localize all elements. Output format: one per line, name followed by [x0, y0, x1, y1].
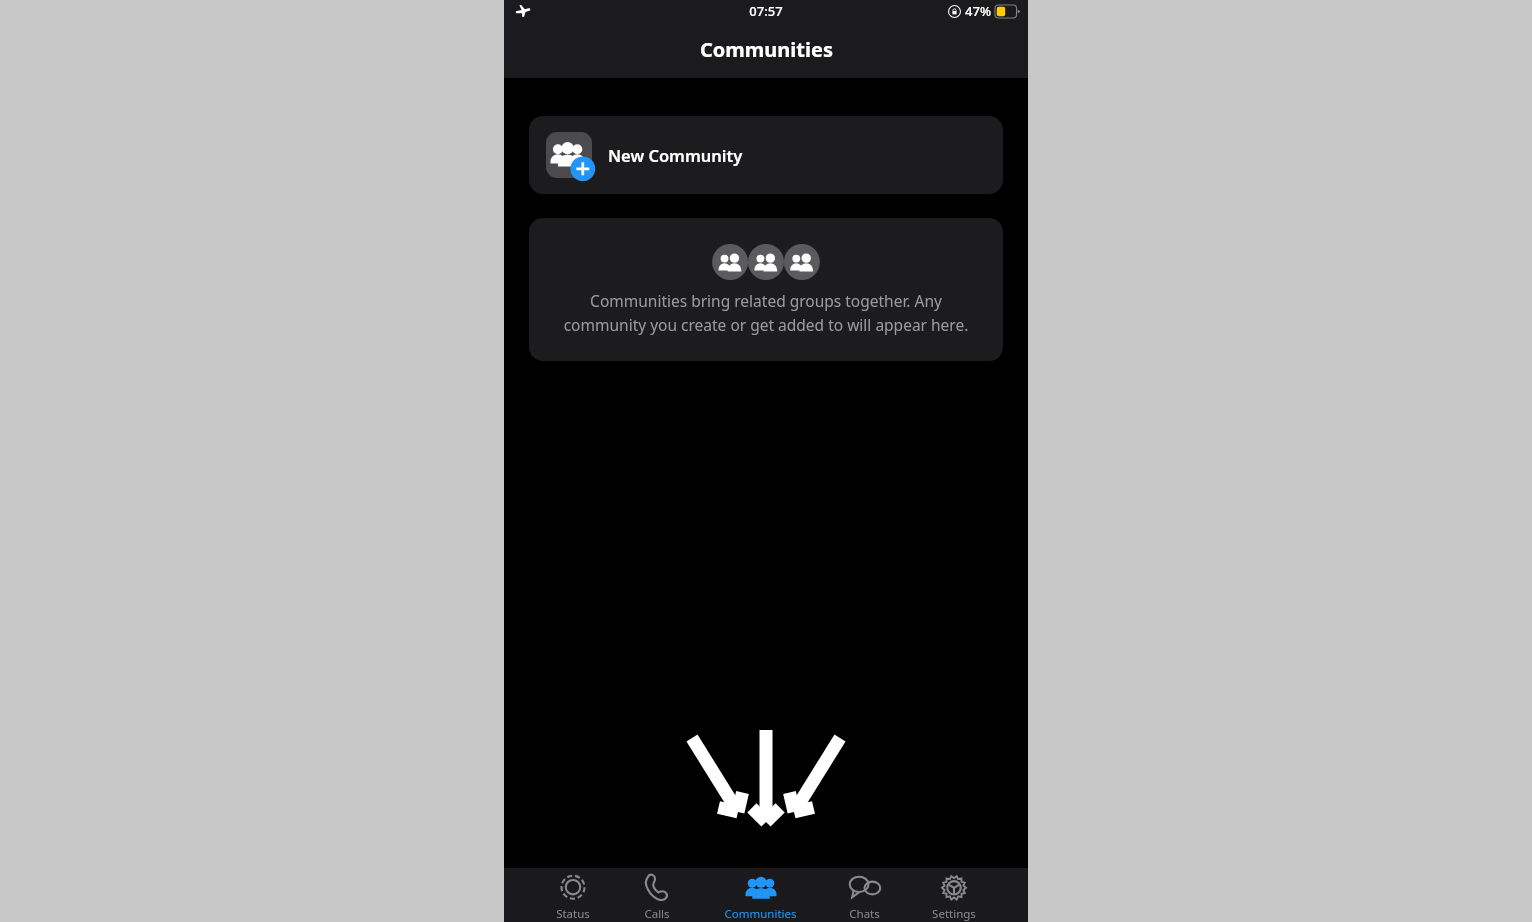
staticText: 07:57 [749, 2, 783, 20]
button[interactable]: Chats [849, 868, 880, 922]
staticText: Calls [644, 906, 670, 922]
button[interactable]: Communities [724, 868, 797, 922]
button[interactable]: New Community [529, 116, 1003, 194]
staticText: WABETAINFO [504, 130, 1028, 190]
staticText: Status [556, 906, 590, 922]
staticText: Chats [849, 906, 880, 922]
staticText: 47% [965, 2, 991, 20]
staticText: Settings [932, 906, 976, 922]
staticText: Communities [700, 36, 833, 63]
button[interactable]: Status [556, 868, 590, 922]
staticText: New Community [608, 144, 743, 166]
staticText: WABETAINFO [504, 294, 1028, 354]
staticText: Communities [724, 906, 797, 922]
button[interactable]: Settings [932, 868, 976, 922]
button[interactable]: Calls [642, 868, 672, 922]
staticText: Communities bring related groups togethe… [549, 290, 983, 335]
